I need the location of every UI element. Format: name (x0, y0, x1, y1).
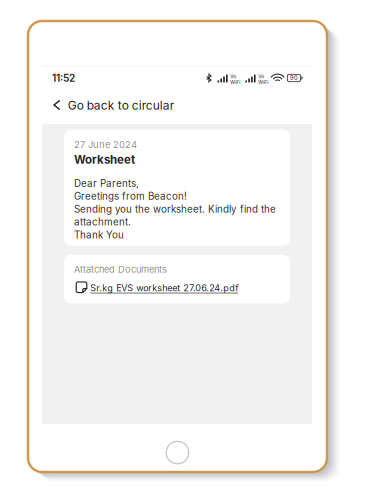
button[interactable]: Sr.kg EVS worksheet 27.06.24.pdf (74, 275, 280, 294)
button[interactable]: Go back to circular (42, 90, 312, 124)
staticText: Sr.kg EVS worksheet 27.06.24.pdf (90, 282, 238, 293)
staticText: Attatched Documents (74, 264, 167, 275)
staticText: 27 June 2024 (74, 139, 137, 150)
staticText: Vo (258, 73, 264, 79)
staticText: Dear Parents, Greetings from Beacon! Sen… (74, 177, 276, 241)
staticText: 90 (290, 74, 298, 81)
staticText: Worksheet (74, 153, 135, 167)
staticText: Go back to circular (68, 98, 175, 113)
staticText: 11:52 (52, 72, 75, 84)
staticText: WiFi (230, 79, 240, 85)
staticText: WiFi (258, 79, 268, 85)
staticText: Vo (230, 73, 236, 79)
